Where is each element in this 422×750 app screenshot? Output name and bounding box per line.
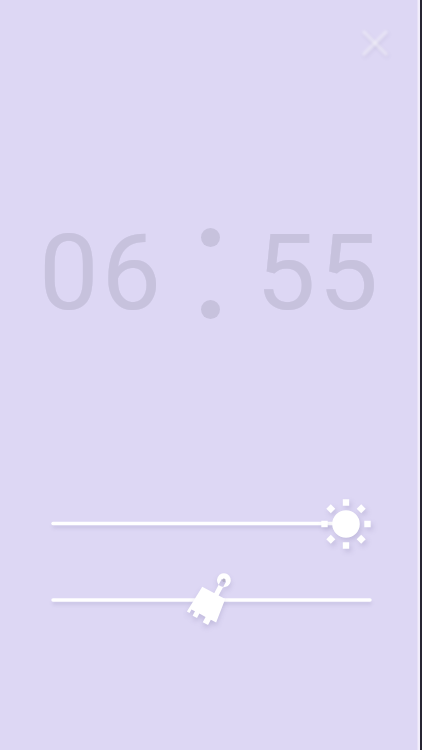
staticText: 55 — [256, 211, 382, 335]
button[interactable] — [355, 23, 395, 63]
button[interactable] — [45, 568, 378, 630]
button[interactable] — [45, 494, 378, 554]
staticText: 06 — [39, 211, 165, 335]
